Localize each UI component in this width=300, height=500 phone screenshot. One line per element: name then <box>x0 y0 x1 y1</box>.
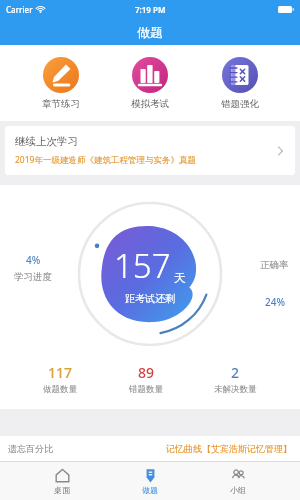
other: 小组 <box>231 468 246 483</box>
staticText: 学习进度 <box>14 271 52 283</box>
other: 做题 <box>143 468 158 483</box>
staticText: 做题 <box>142 485 158 495</box>
staticText: 24% <box>265 295 285 309</box>
button[interactable]: 小组 <box>212 466 264 497</box>
staticText: 117 <box>48 363 73 382</box>
staticText: 未解决数量 <box>214 384 257 395</box>
button[interactable]: 117 <box>35 363 85 395</box>
staticText: 小组 <box>230 485 246 495</box>
staticText: 错题强化 <box>221 98 259 110</box>
button[interactable]: 记忆曲线【艾宾浩斯记忆管理】 <box>166 443 292 454</box>
staticText: 89 <box>138 363 155 382</box>
button[interactable]: 继续上次学习 <box>5 126 295 175</box>
staticText: 4% <box>26 253 41 267</box>
staticText: 做题数量 <box>43 384 77 395</box>
staticText: 157 <box>114 243 171 288</box>
button[interactable]: 89 <box>121 363 171 395</box>
staticText: 桌面 <box>54 485 70 495</box>
staticText: Carrier <box>6 4 33 15</box>
button[interactable]: 模拟考试 <box>121 55 179 112</box>
staticText: 错题数量 <box>129 384 163 395</box>
button[interactable]: 桌面 <box>36 466 88 497</box>
staticText: 天 <box>174 270 186 285</box>
staticText: 距考试还剩 <box>125 292 175 305</box>
button[interactable]: 错题强化 <box>211 55 269 112</box>
staticText: 7:19 PM <box>135 4 166 15</box>
button[interactable]: 做题 <box>124 466 176 497</box>
staticText: 正确率 <box>260 259 289 271</box>
staticText: 2019年一级建造师《建筑工程管理与实务》真题 <box>15 154 196 166</box>
other: 桌面 <box>55 468 70 483</box>
staticText: 模拟考试 <box>131 98 169 110</box>
staticText: 章节练习 <box>42 98 80 110</box>
staticText: 遗忘百分比 <box>8 443 53 454</box>
staticText: 做题 <box>137 24 163 40</box>
staticText: 继续上次学习 <box>15 135 78 148</box>
button[interactable]: 章节练习 <box>32 55 90 112</box>
staticText: 2 <box>231 363 240 382</box>
button[interactable]: 2 <box>206 363 265 395</box>
